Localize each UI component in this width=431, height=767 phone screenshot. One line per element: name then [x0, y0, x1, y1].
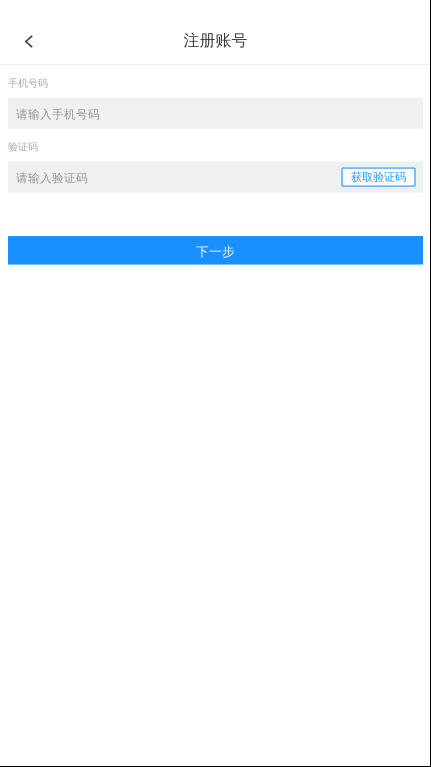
staticText: 下一步 [196, 244, 235, 260]
button[interactable]: 下一步 [8, 236, 423, 265]
staticText: 手机号码 [8, 77, 48, 89]
staticText: 获取验证码 [351, 170, 406, 184]
staticText: 注册账号 [183, 31, 247, 50]
button[interactable]: 请输入手机号码 [8, 98, 423, 129]
button[interactable]: Back [0, 17, 58, 64]
staticText: 验证码 [8, 141, 38, 153]
button[interactable]: 获取验证码 [342, 168, 415, 186]
staticText: 请输入验证码 [16, 171, 88, 185]
button[interactable]: 请输入验证码 [8, 162, 423, 193]
staticText: 请输入手机号码 [16, 107, 100, 121]
